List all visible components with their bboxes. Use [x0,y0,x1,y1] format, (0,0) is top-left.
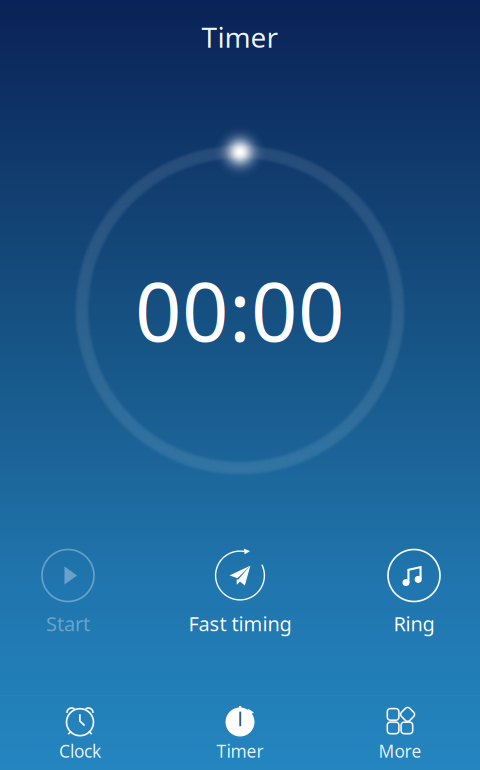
staticText: Timer [216,739,263,762]
button[interactable]: Timer [160,697,320,769]
button[interactable]: Clock [0,697,160,769]
button[interactable]: More [320,697,480,769]
staticText: Start [46,610,90,637]
staticText: More [378,739,421,762]
staticText: Ring [393,610,434,637]
button[interactable]: Start [0,549,148,634]
staticText: Clock [59,739,101,762]
staticText: 00:00 [135,256,345,364]
button[interactable]: Ring [334,549,480,634]
staticText: Timer [201,18,278,56]
button[interactable]: Fast timing [160,549,320,634]
staticText: Fast timing [188,610,291,637]
